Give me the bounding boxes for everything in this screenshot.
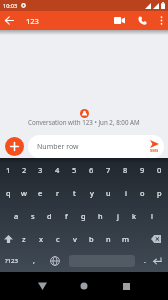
staticText: j [117,211,119,221]
button[interactable]: n [100,227,117,250]
staticText: ?123 [5,257,18,265]
staticText: , [33,256,35,266]
button[interactable]: b [83,227,100,250]
button[interactable] [109,11,129,30]
staticText: d [47,211,52,221]
staticText: Number row [37,142,79,152]
staticText: g [81,211,86,221]
staticText: y [90,188,94,198]
button[interactable] [44,250,66,272]
button[interactable]: d [41,204,58,227]
staticText: l [151,211,153,221]
staticText: . [144,256,146,266]
staticText: h [98,211,103,221]
staticText: 9 [140,165,145,175]
button[interactable]: a [8,204,24,227]
staticText: 3 [38,165,43,175]
button[interactable]: u [100,181,117,204]
button[interactable]: 1 [0,158,16,181]
staticText: 10:03 [3,2,18,9]
staticText: b [89,234,94,244]
button[interactable]: 0 [151,158,168,181]
button[interactable]: 8 [117,158,134,181]
button[interactable]: f [58,204,75,227]
button[interactable]: l [143,204,160,227]
staticText: a [14,211,19,221]
staticText: n [106,234,111,244]
staticText: o [140,188,145,198]
staticText: u [106,188,111,198]
staticText: i [125,188,127,198]
staticText: v [73,234,77,244]
staticText: e [38,188,43,198]
button[interactable]: x [32,227,49,250]
staticText: m [122,234,130,244]
button[interactable] [152,250,168,272]
staticText: 5 [72,165,77,175]
button[interactable] [21,272,63,300]
staticText: 2 [22,165,27,175]
staticText: s [31,211,35,221]
button[interactable]: s [24,204,41,227]
button[interactable] [134,227,168,250]
button[interactable]: , [23,250,44,272]
button[interactable] [132,11,152,30]
button[interactable]: j [109,204,126,227]
button[interactable]: . [138,250,152,272]
button[interactable]: y [83,181,100,204]
button[interactable]: t [66,181,83,204]
staticText: q [6,188,11,198]
button[interactable] [105,272,147,300]
button[interactable]: 6 [83,158,100,181]
staticText: 7 [106,165,111,175]
button[interactable]: g [75,204,92,227]
staticText: p [157,188,162,198]
button[interactable]: r [49,181,66,204]
button[interactable]: z [16,227,32,250]
staticText: 123 [26,16,39,26]
staticText: t [73,188,76,198]
staticText: 0 [157,165,162,175]
staticText: SMS [150,148,159,153]
staticText: 6 [89,165,94,175]
button[interactable]: SMS [150,140,164,153]
button[interactable]: 2 [16,158,32,181]
button[interactable]: m [117,227,134,250]
staticText: 4 [55,165,60,175]
staticText: c [56,234,60,244]
staticText: x [39,234,43,244]
button[interactable]: k [126,204,143,227]
button[interactable] [0,11,19,30]
button[interactable]: 7 [100,158,117,181]
button[interactable] [0,227,16,250]
staticText: w [21,188,27,198]
staticText: r [56,188,60,198]
button[interactable]: h [92,204,109,227]
button[interactable]: v [66,227,83,250]
button[interactable]: c [49,227,66,250]
button[interactable]: i [117,181,134,204]
button[interactable]: o [134,181,151,204]
staticText: z [22,234,26,244]
button[interactable] [63,272,105,300]
button[interactable] [5,137,24,156]
button[interactable]: 5 [66,158,83,181]
button[interactable]: 3 [32,158,49,181]
staticText: Conversation with 123 • Jun 2, 8:00 AM [28,118,140,126]
button[interactable]: e [32,181,49,204]
button[interactable]: Number row [28,135,164,158]
button[interactable]: ?123 [0,250,23,272]
button[interactable] [154,11,168,30]
button[interactable]: q [0,181,16,204]
button[interactable]: 4 [49,158,66,181]
staticText: 8 [123,165,128,175]
button[interactable]: 9 [134,158,151,181]
button[interactable] [66,250,138,272]
button[interactable]: p [151,181,168,204]
button[interactable]: w [16,181,32,204]
staticText: k [132,211,137,221]
staticText: f [65,211,68,221]
staticText: 1 [6,165,11,175]
